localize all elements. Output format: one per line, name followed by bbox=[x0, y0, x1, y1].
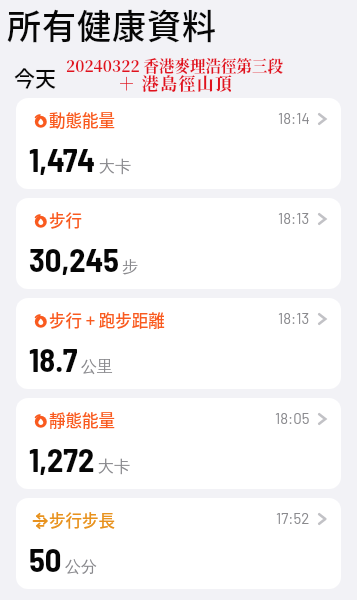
staticText: 18:05 bbox=[275, 409, 310, 427]
staticText: 步行 + 跑步距離 bbox=[49, 308, 165, 332]
staticText: 30,245 bbox=[29, 239, 119, 278]
staticText: 靜態能量 bbox=[49, 408, 115, 432]
staticText: 動態能量 bbox=[49, 108, 115, 132]
staticText: 公里 bbox=[81, 357, 113, 377]
staticText: 18:13 bbox=[278, 209, 310, 227]
staticText: 公分 bbox=[65, 557, 97, 577]
button[interactable]: 動態能量 bbox=[16, 98, 341, 189]
staticText: 18:13 bbox=[278, 309, 310, 327]
staticText: 步行 bbox=[49, 208, 82, 232]
staticText: ＋ 港島徑山頂 bbox=[118, 70, 234, 94]
button[interactable]: 步行 bbox=[16, 198, 341, 289]
staticText: 1,272 bbox=[29, 439, 95, 478]
staticText: 18.7 bbox=[29, 339, 78, 378]
staticText: 1,474 bbox=[29, 139, 96, 178]
staticText: 20240322 香港麥理浩徑第三段 bbox=[66, 54, 283, 76]
staticText: 大卡 bbox=[98, 457, 130, 477]
staticText: 18:14 bbox=[278, 109, 310, 127]
staticText: 今天 bbox=[14, 62, 56, 92]
staticText: 17:52 bbox=[276, 509, 310, 527]
staticText: 大卡 bbox=[99, 157, 131, 177]
button[interactable]: 靜態能量 bbox=[16, 398, 341, 489]
button[interactable]: 步行步長 bbox=[16, 498, 341, 589]
staticText: 步 bbox=[122, 257, 138, 277]
staticText: 50 bbox=[29, 539, 62, 578]
staticText: 所有健康資料 bbox=[7, 0, 217, 49]
staticText: 步行步長 bbox=[49, 508, 115, 532]
button[interactable]: 步行 + 跑步距離 bbox=[16, 298, 341, 389]
